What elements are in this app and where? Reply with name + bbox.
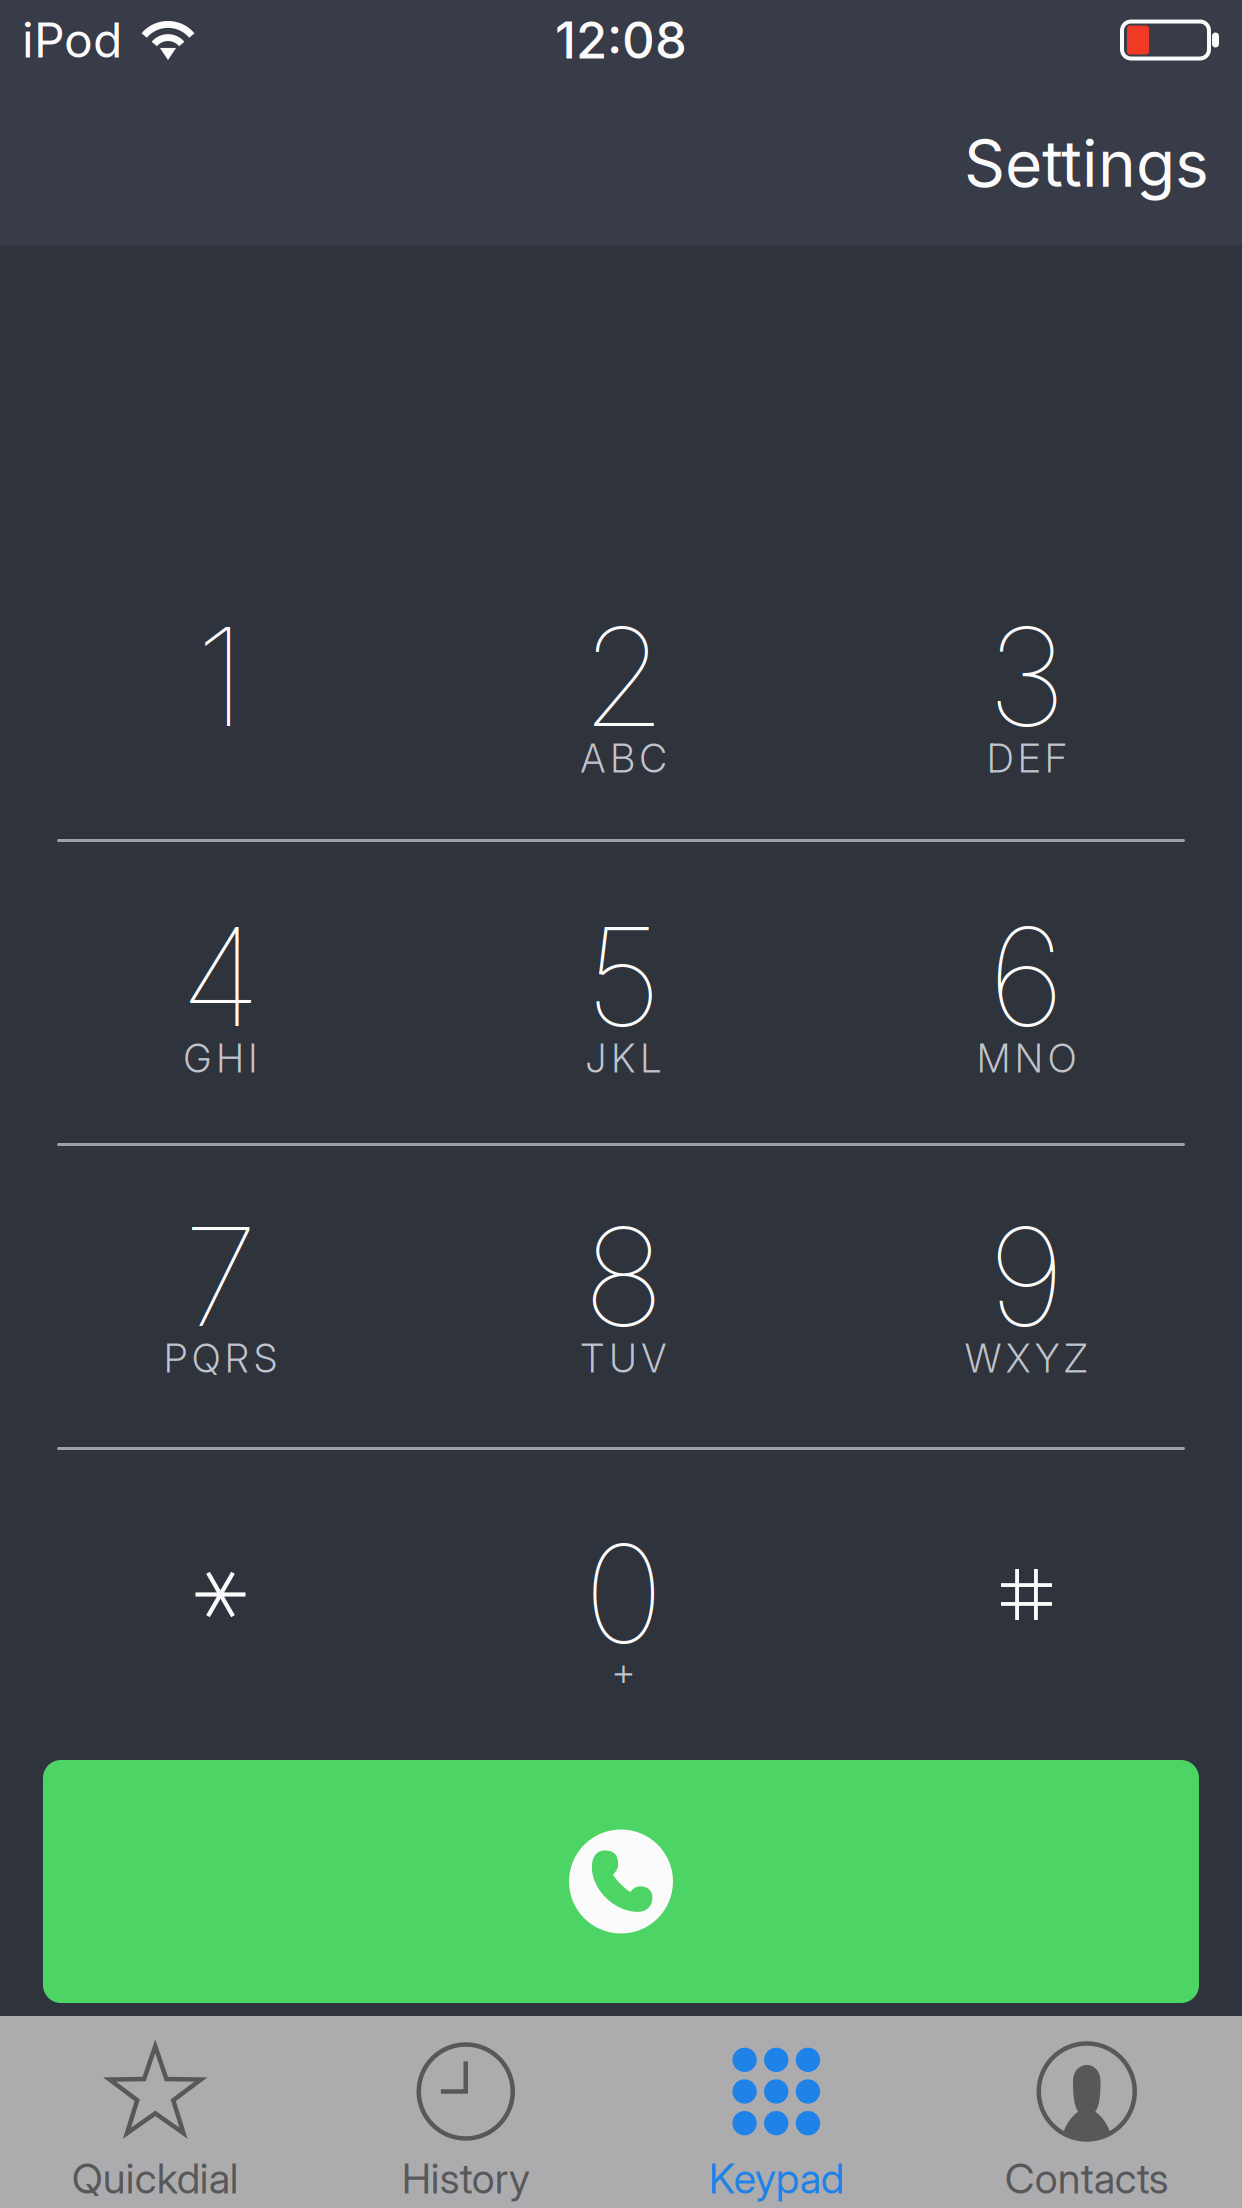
button[interactable]: 5	[422, 842, 825, 1143]
staticText: +	[611, 1648, 635, 1695]
button[interactable]: 7	[19, 1146, 422, 1447]
staticText: 7	[183, 1194, 257, 1359]
staticText: 6	[988, 894, 1065, 1059]
staticText: JKL	[585, 1035, 661, 1082]
staticText: 9	[988, 1194, 1065, 1359]
staticText: Settings	[964, 125, 1209, 202]
button[interactable]: Contacts	[931, 2016, 1242, 2208]
staticText: 0	[583, 1511, 663, 1676]
staticText: ABC	[580, 735, 666, 782]
button[interactable]: 1	[19, 538, 422, 839]
button[interactable]: Pound	[825, 1450, 1228, 1751]
button[interactable]: 6	[825, 842, 1228, 1143]
staticText: 12:08	[555, 9, 687, 71]
staticText: Contacts	[1005, 2153, 1169, 2203]
staticText: DEF	[987, 735, 1066, 782]
staticText: TUV	[580, 1335, 666, 1382]
staticText: MNO	[977, 1035, 1076, 1082]
staticText: 8	[583, 1194, 664, 1359]
button[interactable]: 0	[422, 1450, 825, 1751]
button[interactable]: Star	[19, 1450, 422, 1751]
staticText: History	[402, 2153, 530, 2203]
button[interactable]: Keypad	[621, 2016, 931, 2208]
staticText: 4	[180, 894, 261, 1059]
staticText: 3	[987, 594, 1066, 759]
button[interactable]: 3	[825, 538, 1228, 839]
button[interactable]: 9	[825, 1146, 1228, 1447]
button[interactable]: 2	[422, 538, 825, 839]
staticText: GHI	[183, 1035, 257, 1082]
button[interactable]: 8	[422, 1146, 825, 1447]
staticText: 1	[195, 594, 245, 759]
staticText: WXYZ	[965, 1335, 1088, 1382]
button[interactable]: Settings	[924, 103, 1242, 224]
button[interactable]: Call	[0, 1760, 1242, 2003]
staticText: 5	[585, 894, 662, 1059]
staticText: iPod	[22, 11, 122, 69]
button[interactable]: Quickdial	[0, 2016, 310, 2208]
staticText: PQRS	[164, 1335, 277, 1382]
staticText: Quickdial	[72, 2153, 239, 2203]
staticText: Keypad	[709, 2153, 844, 2203]
staticText: 2	[581, 594, 665, 759]
button[interactable]: 4	[19, 842, 422, 1143]
button[interactable]: History	[310, 2016, 621, 2208]
